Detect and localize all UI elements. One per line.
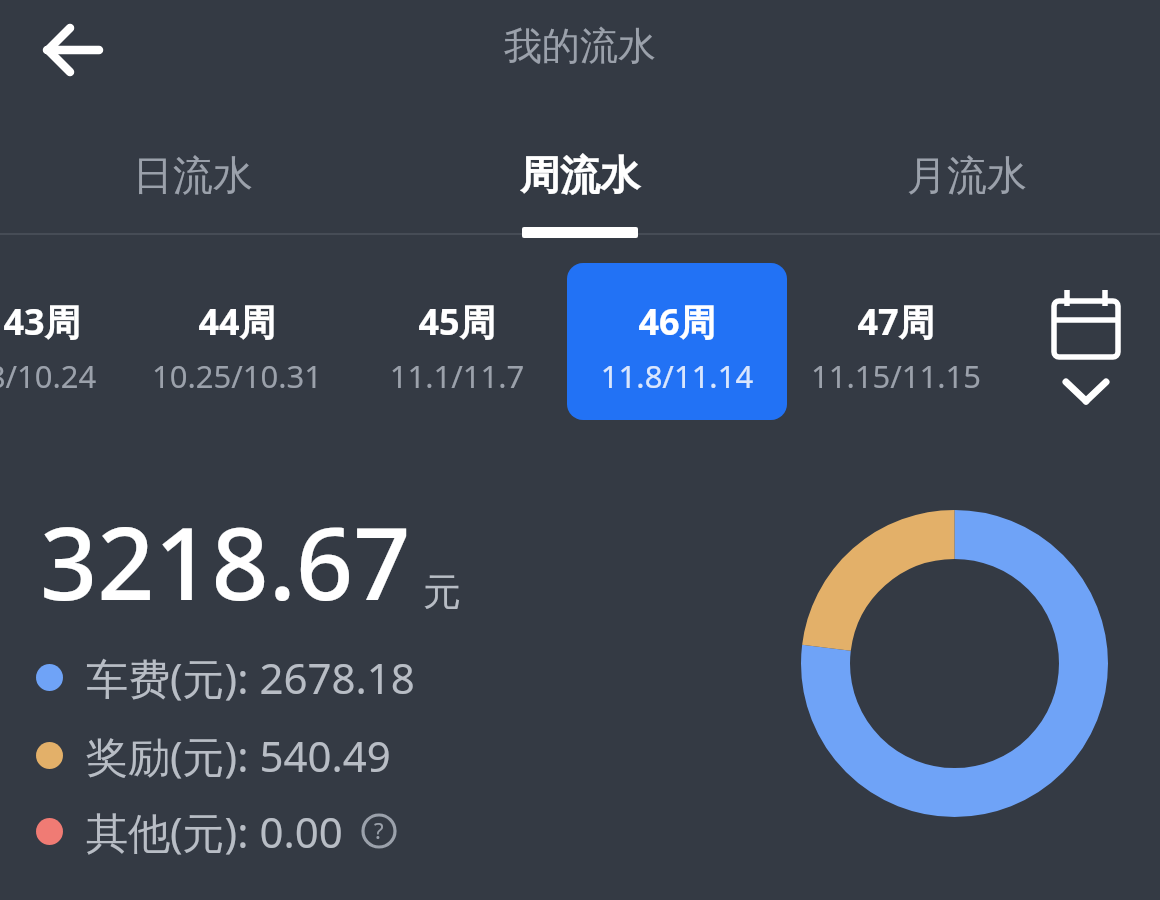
staticText: 11.8/11.14	[567, 355, 787, 397]
staticText: 元	[423, 568, 461, 616]
staticText: 日流水	[133, 150, 253, 200]
button[interactable]: 46周	[567, 263, 787, 420]
button[interactable]: 44周	[137, 263, 337, 420]
button[interactable]: 周流水	[386, 120, 773, 230]
button[interactable]: 45周	[364, 263, 550, 420]
staticText: 月流水	[907, 150, 1027, 200]
staticText: 45周	[364, 297, 550, 346]
other: Help	[361, 813, 397, 849]
staticText: 我的流水	[0, 22, 1160, 70]
staticText: 46周	[567, 297, 787, 346]
button[interactable]: 其他(元): 0.00	[36, 802, 397, 860]
staticText: 43周	[0, 297, 132, 346]
staticText: 11.1/11.7	[364, 355, 550, 397]
button[interactable]: 奖励(元): 540.49	[36, 726, 391, 784]
staticText: 11.15/11.15	[793, 355, 999, 397]
button[interactable]: 43周	[0, 263, 132, 420]
button[interactable]: 47周	[793, 263, 999, 420]
staticText: 47周	[793, 297, 999, 346]
staticText: ?	[374, 815, 384, 845]
staticText: 其他(元): 0.00	[86, 803, 343, 860]
button[interactable]: Pick date	[1028, 275, 1143, 390]
staticText: 奖励(元): 540.49	[86, 727, 391, 784]
button[interactable]: 车费(元): 2678.18	[36, 648, 415, 706]
button[interactable]: 月流水	[773, 120, 1160, 230]
staticText: 44周	[137, 297, 337, 346]
staticText: 8/10.24	[0, 355, 132, 397]
staticText: 3218.67	[40, 493, 411, 629]
staticText: 周流水	[520, 150, 640, 200]
staticText: 车费(元): 2678.18	[86, 649, 415, 706]
button[interactable]: Back	[33, 9, 113, 89]
staticText: 10.25/10.31	[137, 355, 337, 397]
button[interactable]: 日流水	[0, 120, 386, 230]
